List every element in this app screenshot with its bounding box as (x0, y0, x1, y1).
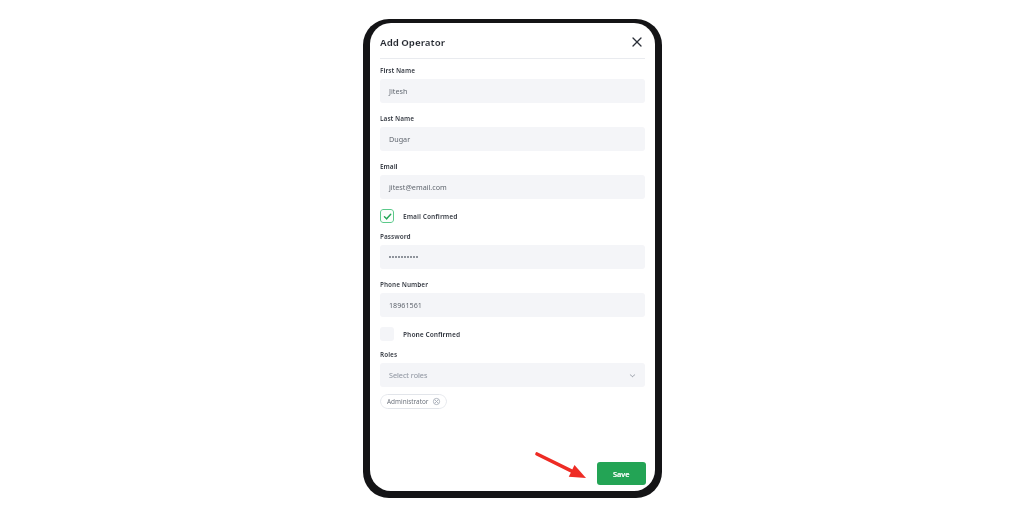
button[interactable]: Email Confirmed (380, 209, 458, 223)
staticText: First Name (380, 66, 415, 75)
button[interactable]: Select roles (380, 363, 645, 387)
staticText: Jitesh (389, 86, 408, 96)
staticText: Dugar (389, 134, 411, 144)
button[interactable]: Phone Confirmed (380, 327, 461, 341)
staticText: Save (613, 469, 630, 479)
button[interactable]: Close (629, 34, 645, 50)
button[interactable] (380, 245, 645, 269)
button[interactable]: Administrator (380, 394, 447, 409)
staticText: Add Operator (380, 36, 445, 49)
button[interactable]: Save (597, 462, 646, 485)
button[interactable]: Jitesh (380, 79, 645, 103)
staticText: Select roles (389, 370, 428, 380)
staticText: Administrator (387, 397, 429, 406)
staticText: Email Confirmed (403, 212, 458, 221)
staticText: Last Name (380, 114, 415, 123)
staticText: Password (380, 232, 411, 241)
staticText: Phone Confirmed (403, 330, 461, 339)
staticText: Email (380, 162, 398, 171)
staticText: Roles (380, 350, 398, 359)
button[interactable]: Dugar (380, 127, 645, 151)
button[interactable]: jitest@email.com (380, 175, 645, 199)
staticText: 18961561 (389, 300, 422, 310)
button[interactable]: 18961561 (380, 293, 645, 317)
staticText: jitest@email.com (389, 182, 447, 192)
staticText: Phone Number (380, 280, 429, 289)
